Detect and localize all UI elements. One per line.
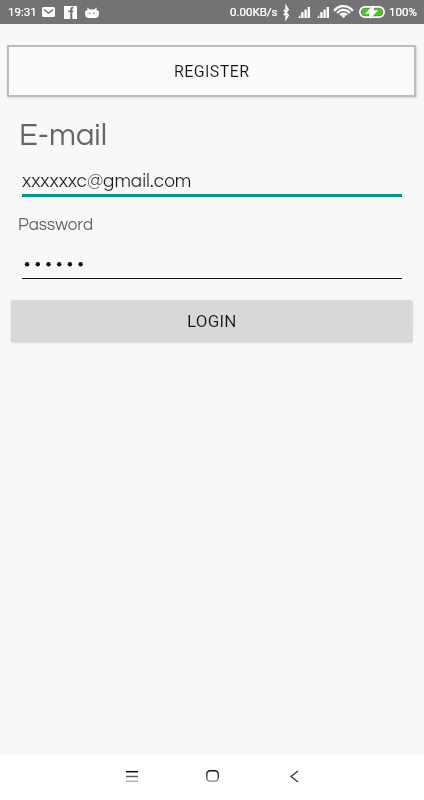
button[interactable]: Home — [182, 753, 242, 798]
button[interactable]: Password — [18, 210, 402, 280]
button[interactable]: Back — [264, 754, 324, 799]
button[interactable]: Recent apps — [102, 754, 162, 799]
staticText: LOGIN — [187, 311, 237, 331]
button[interactable]: LOGIN — [11, 300, 412, 342]
button[interactable]: REGISTER — [7, 45, 416, 97]
button[interactable]: E-mail — [18, 112, 402, 197]
staticText: xxxxxxc@gmail.com — [22, 171, 192, 191]
staticText: REGISTER — [174, 62, 250, 81]
staticText: Password — [18, 216, 94, 234]
staticText: E-mail — [19, 120, 108, 152]
staticText: 19:31 — [8, 5, 37, 18]
staticText: 100% — [389, 5, 417, 18]
staticText: 0.00KB/s — [230, 5, 278, 18]
